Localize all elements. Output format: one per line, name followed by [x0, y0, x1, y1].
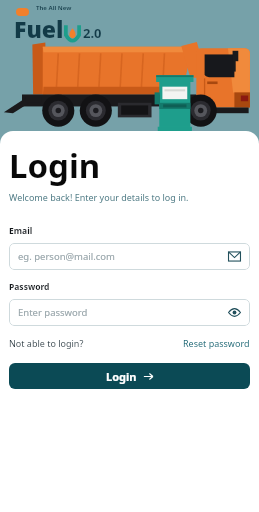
staticText: Email [9, 225, 33, 237]
staticText: Login [9, 143, 101, 188]
staticText: The All New [36, 4, 72, 12]
button[interactable]: Enter password [9, 299, 250, 326]
staticText: Fuel [14, 13, 64, 44]
staticText: eg. person@mail.com [18, 250, 115, 263]
staticText: Password [9, 281, 50, 293]
staticText: Login [106, 369, 137, 384]
staticText: Enter password [18, 306, 88, 319]
staticText: Welcome back! Enter your details to log … [9, 191, 189, 203]
button[interactable]: Not able to login? [9, 337, 84, 349]
staticText: Reset password [183, 337, 250, 349]
staticText: 2.0 [83, 24, 102, 42]
button[interactable]: eg. person@mail.com [9, 243, 250, 270]
other: Email [228, 250, 241, 263]
button[interactable]: Reset password [183, 337, 250, 349]
other: Show password [228, 306, 241, 319]
button[interactable]: Login [9, 363, 250, 389]
staticText: Not able to login? [9, 337, 84, 349]
